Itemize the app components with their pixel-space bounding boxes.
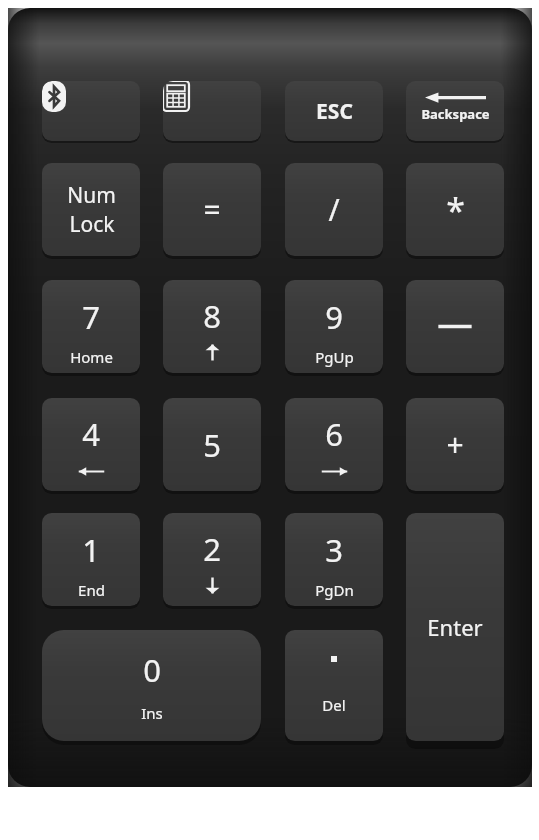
staticText: PgDn [315, 580, 354, 600]
button[interactable]: * [406, 163, 504, 256]
staticText: Enter [427, 612, 483, 642]
staticText: 3 [325, 529, 343, 571]
staticText: 6 [325, 413, 343, 455]
staticText: * [446, 187, 465, 233]
button[interactable]: ESC [285, 81, 383, 141]
button[interactable]: Calculator [163, 81, 261, 141]
button[interactable]: 7 Home [42, 280, 140, 373]
staticText: + [446, 424, 464, 465]
staticText: 8 [203, 295, 221, 337]
button[interactable]: Enter [406, 513, 504, 741]
staticText: Lock [69, 210, 115, 239]
button[interactable]: Period Del [285, 630, 383, 741]
staticText: ESC [316, 97, 353, 126]
button[interactable]: 3 PgDn [285, 513, 383, 606]
button[interactable]: Minus [406, 280, 504, 373]
button[interactable]: Backspace [406, 81, 504, 141]
staticText: Num [67, 181, 116, 210]
staticText: PgUp [315, 347, 354, 367]
button[interactable]: = [163, 163, 261, 256]
button[interactable]: 0 Ins [42, 630, 261, 741]
staticText: Home [70, 347, 113, 367]
button[interactable]: 6 Right [285, 398, 383, 491]
button[interactable]: 9 PgUp [285, 280, 383, 373]
staticText: 7 [82, 296, 100, 338]
button[interactable]: 8 Up [163, 280, 261, 373]
staticText: Del [322, 695, 346, 715]
staticText: 2 [203, 528, 221, 570]
button[interactable]: Bluetooth [42, 81, 140, 141]
button[interactable]: 5 [163, 398, 261, 491]
staticText: 9 [325, 296, 343, 338]
button[interactable]: 1 End [42, 513, 140, 606]
button[interactable]: Plus [406, 398, 504, 491]
button[interactable]: Num Lock [42, 163, 140, 256]
staticText: 5 [203, 424, 221, 466]
button[interactable]: 2 Down [163, 513, 261, 606]
staticText: Backspace [421, 105, 490, 123]
staticText: Ins [141, 703, 163, 723]
staticText: End [78, 580, 105, 600]
staticText: 1 [82, 529, 100, 571]
button[interactable]: / [285, 163, 383, 256]
button[interactable]: 4 Left [42, 398, 140, 491]
staticText: = [203, 189, 221, 230]
staticText: 4 [82, 413, 100, 455]
staticText: / [328, 189, 340, 230]
staticText: 0 [143, 649, 161, 691]
